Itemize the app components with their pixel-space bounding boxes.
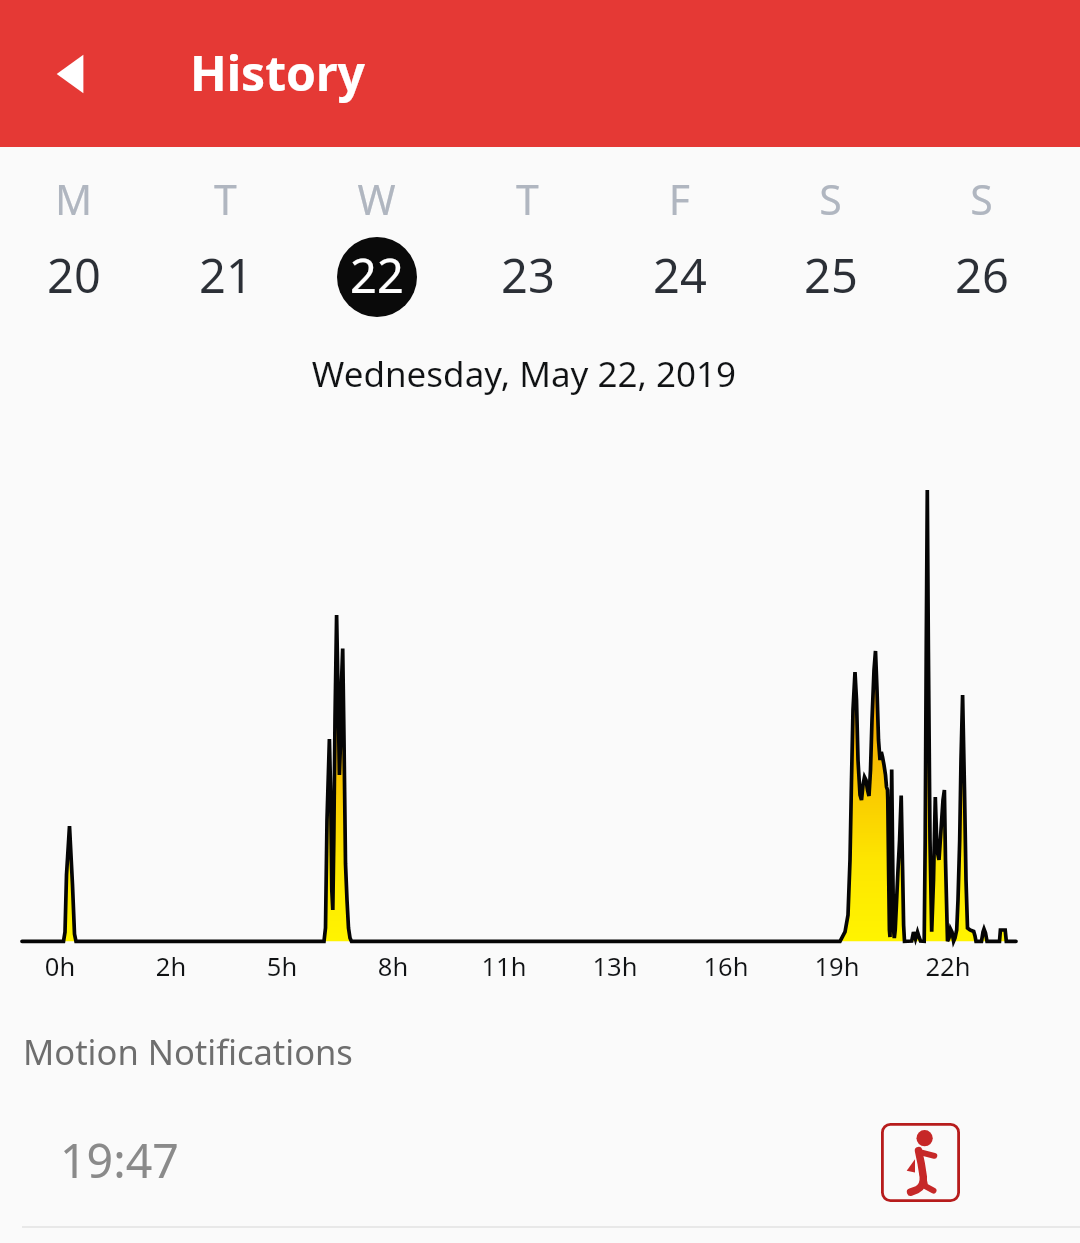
staticText: 21 (199, 243, 253, 307)
button[interactable]: Motion detected (881, 1123, 960, 1202)
staticText: 26 (955, 243, 1009, 307)
staticText: 25 (804, 243, 858, 307)
staticText: S (906, 171, 1057, 227)
staticText: History (190, 40, 365, 105)
staticText: 16h (681, 949, 771, 984)
button[interactable]: W (301, 170, 452, 320)
staticText: F (604, 171, 755, 227)
staticText: Wednesday, May 22, 2019 (0, 350, 1064, 398)
staticText: S (755, 171, 906, 227)
staticText: Motion Notifications (23, 1028, 353, 1075)
staticText: 2h (126, 949, 216, 984)
staticText: 13h (570, 949, 660, 984)
button[interactable]: Back (38, 36, 114, 112)
staticText: 11h (459, 949, 549, 984)
staticText: 22 (350, 243, 404, 307)
staticText: M (0, 171, 149, 227)
button[interactable]: M (0, 170, 149, 320)
staticText: 5h (237, 949, 327, 984)
button[interactable]: T (150, 170, 301, 320)
staticText: 0h (15, 949, 105, 984)
staticText: W (301, 171, 452, 227)
staticText: 19:47 (60, 1128, 179, 1191)
button[interactable]: 19:47 (0, 1097, 1080, 1226)
staticText: 19h (792, 949, 882, 984)
staticText: 23 (501, 243, 555, 307)
button[interactable]: S (906, 170, 1057, 320)
staticText: 22h (903, 949, 993, 984)
staticText: T (452, 171, 603, 227)
staticText: 20 (47, 243, 101, 307)
button[interactable]: S (755, 170, 906, 320)
staticText: 8h (348, 949, 438, 984)
staticText: T (150, 171, 301, 227)
button[interactable]: T (452, 170, 603, 320)
staticText: 24 (653, 243, 707, 307)
button[interactable]: F (604, 170, 755, 320)
